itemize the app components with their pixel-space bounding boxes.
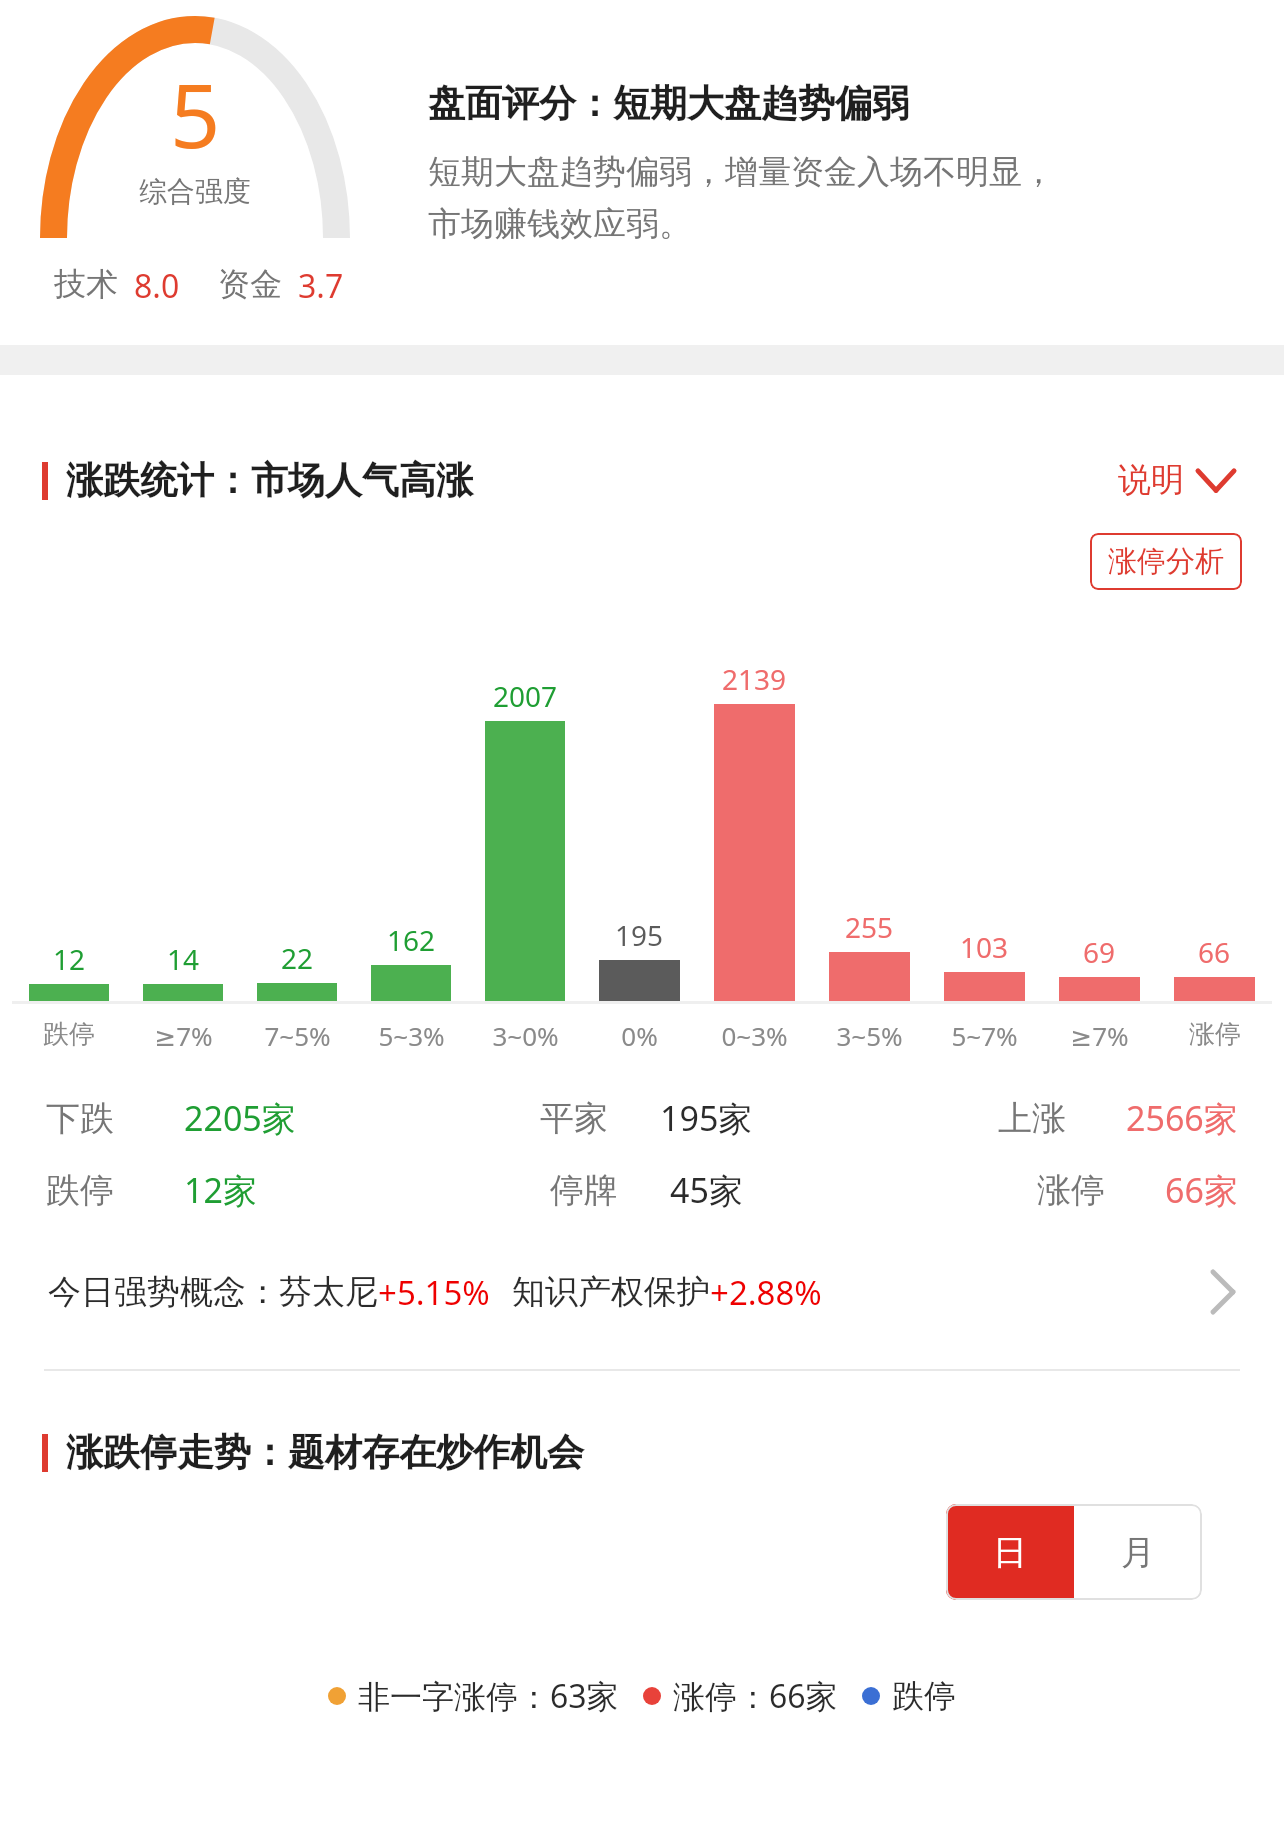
button[interactable]: 今日强势概念：芬太尼: [0, 1269, 1284, 1315]
staticText: 盘面评分：短期大盘趋势偏弱: [428, 80, 909, 127]
staticText: 0%: [621, 1018, 658, 1053]
staticText: 0~3%: [721, 1018, 788, 1053]
staticText: 停牌: [550, 1169, 618, 1212]
staticText: 8.0: [134, 264, 180, 308]
staticText: 跌停: [46, 1169, 114, 1212]
staticText: ≥7%: [1070, 1018, 1129, 1053]
staticText: 月: [1121, 1531, 1155, 1574]
staticText: 2139: [722, 660, 787, 698]
button[interactable]: 日: [946, 1504, 1074, 1600]
staticText: 3~0%: [492, 1018, 559, 1053]
staticText: 12: [53, 940, 86, 978]
staticText: 14: [167, 940, 200, 978]
staticText: 162: [387, 921, 436, 959]
staticText: +2.88%: [710, 1270, 822, 1315]
staticText: 下跌: [46, 1097, 114, 1140]
staticText: ≥7%: [154, 1018, 213, 1053]
staticText: 66: [1198, 933, 1231, 971]
staticText: 今日强势概念：芬太尼: [48, 1271, 378, 1313]
staticText: 非一字涨停：63家: [358, 1674, 619, 1718]
staticText: 195家: [660, 1095, 753, 1141]
staticText: 2205家: [184, 1095, 296, 1141]
staticText: 5~7%: [951, 1018, 1018, 1053]
staticText: 69: [1083, 933, 1116, 971]
staticText: 45家: [670, 1167, 743, 1213]
staticText: 短期大盘趋势偏弱，增量资金入场不明显，市场赚钱效应弱。: [428, 151, 1058, 245]
staticText: 跌停: [892, 1676, 956, 1716]
staticText: 资金: [218, 264, 282, 304]
staticText: 涨停分析: [1108, 543, 1224, 580]
staticText: 3~5%: [836, 1018, 903, 1053]
staticText: 跌停: [43, 1018, 95, 1051]
staticText: 103: [960, 928, 1009, 966]
staticText: 195: [615, 916, 664, 954]
staticText: 2566家: [1126, 1095, 1238, 1141]
staticText: 上涨: [998, 1097, 1066, 1140]
button[interactable]: 月: [1074, 1504, 1202, 1600]
staticText: 66家: [1165, 1167, 1238, 1213]
staticText: +5.15%: [378, 1270, 490, 1315]
staticText: 3.7: [298, 264, 344, 308]
staticText: 说明: [1118, 459, 1184, 501]
staticText: 涨停：66家: [673, 1674, 838, 1718]
staticText: 12家: [184, 1167, 257, 1213]
staticText: 涨跌停走势：题材存在炒作机会: [66, 1429, 584, 1476]
staticText: 涨停: [1037, 1169, 1105, 1212]
staticText: 日: [993, 1531, 1027, 1574]
staticText: 技术: [54, 264, 118, 304]
staticText: 22: [281, 939, 314, 977]
staticText: 平家: [540, 1097, 608, 1140]
staticText: 5~3%: [378, 1018, 445, 1053]
staticText: 涨跌统计：市场人气高涨: [66, 457, 473, 504]
staticText: 知识产权保护: [512, 1271, 710, 1313]
staticText: 255: [845, 908, 894, 946]
staticText: 综合强度: [139, 174, 251, 209]
staticText: 涨停: [1189, 1018, 1241, 1051]
button[interactable]: 说明: [1112, 453, 1242, 507]
button[interactable]: 涨停分析: [1090, 533, 1242, 590]
staticText: 5: [170, 54, 221, 174]
staticText: 2007: [493, 677, 558, 715]
staticText: 7~5%: [264, 1018, 331, 1053]
